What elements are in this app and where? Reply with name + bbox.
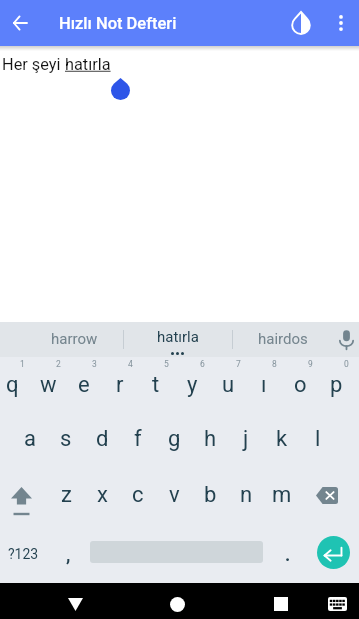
staticText: 6 (200, 359, 205, 369)
button[interactable]: x (84, 468, 120, 522)
button[interactable]: Invert colors (280, 0, 322, 46)
button[interactable]: j (228, 414, 264, 468)
staticText: f (134, 426, 142, 452)
staticText: 3 (92, 359, 97, 369)
staticText: hairdos (258, 330, 308, 348)
staticText: harrow (51, 330, 98, 348)
button[interactable]: c (120, 468, 156, 522)
button[interactable]: g (156, 414, 192, 468)
button[interactable]: Hide keyboard (313, 583, 359, 619)
staticText: g (168, 426, 181, 452)
button[interactable]: a (12, 414, 48, 468)
staticText: , (66, 544, 71, 565)
staticText: k (276, 426, 288, 452)
staticText: 7 (236, 359, 241, 369)
button[interactable]: hatırla (123, 322, 232, 357)
button[interactable]: Home (126, 583, 229, 619)
button[interactable]: n (228, 468, 264, 522)
staticText: h (204, 426, 217, 452)
staticText: x (97, 482, 108, 508)
staticText: 9 (308, 359, 313, 369)
staticText: 1 (20, 359, 25, 369)
staticText: hatırla (157, 328, 199, 346)
button[interactable]: . (263, 522, 312, 583)
staticText: y (187, 372, 198, 398)
button[interactable]: 3 (66, 357, 102, 414)
button[interactable]: b (192, 468, 228, 522)
button[interactable]: harrow (25, 322, 123, 357)
button[interactable]: 1 (0, 357, 30, 414)
button[interactable]: hairdos (232, 322, 333, 357)
button[interactable]: l (300, 414, 336, 468)
button[interactable]: 4 (102, 357, 138, 414)
staticText: d (96, 426, 109, 452)
staticText: 0 (344, 359, 349, 369)
button[interactable]: 0 (318, 357, 354, 414)
button[interactable]: Space (90, 522, 263, 583)
staticText: b (204, 482, 217, 508)
staticText: p (330, 372, 343, 398)
staticText: 4 (128, 359, 133, 369)
staticText: Her şeyi (2, 55, 65, 74)
staticText: v (169, 482, 180, 508)
staticText: ?123 (8, 546, 39, 562)
button[interactable]: 6 (174, 357, 210, 414)
staticText: t (152, 372, 160, 398)
button[interactable]: h (192, 414, 228, 468)
staticText: 8 (272, 359, 277, 369)
staticText: w (40, 372, 57, 398)
staticText: m (272, 482, 292, 508)
button[interactable]: d (84, 414, 120, 468)
button[interactable]: Back (24, 583, 126, 619)
button[interactable]: 7 (210, 357, 246, 414)
button[interactable]: s (48, 414, 84, 468)
staticText: Hızlı Not Defteri (59, 14, 177, 33)
button[interactable]: 9 (282, 357, 318, 414)
staticText: 5 (164, 359, 169, 369)
button[interactable]: Back (0, 0, 40, 46)
button[interactable]: 5 (138, 357, 174, 414)
button[interactable]: z (48, 468, 84, 522)
staticText: . (285, 544, 291, 565)
staticText: c (132, 482, 144, 508)
staticText: z (61, 482, 72, 508)
button[interactable]: v (156, 468, 192, 522)
button[interactable]: Enter (312, 522, 359, 583)
staticText: a (24, 426, 36, 452)
staticText: u (222, 372, 235, 398)
staticText: hatırla (65, 55, 111, 74)
staticText: q (6, 372, 19, 398)
staticText: l (315, 426, 321, 452)
staticText: s (60, 426, 72, 452)
button[interactable]: k (264, 414, 300, 468)
button[interactable]: Backspace (300, 468, 354, 522)
staticText: e (78, 372, 90, 398)
staticText: r (116, 372, 124, 398)
button[interactable]: Voice input (333, 322, 359, 357)
button[interactable]: f (120, 414, 156, 468)
button[interactable]: 8 (246, 357, 282, 414)
button[interactable]: ?123 (0, 522, 46, 583)
staticText: o (294, 372, 307, 398)
button[interactable]: Shift (0, 468, 48, 522)
staticText: j (243, 426, 249, 452)
button[interactable]: 2 (30, 357, 66, 414)
button[interactable]: m (264, 468, 300, 522)
button[interactable]: , (46, 522, 90, 583)
staticText: ı (261, 372, 267, 398)
button[interactable]: More options (322, 0, 359, 46)
button[interactable]: Recents (229, 583, 333, 619)
staticText: n (240, 482, 253, 508)
staticText: 2 (56, 359, 61, 369)
